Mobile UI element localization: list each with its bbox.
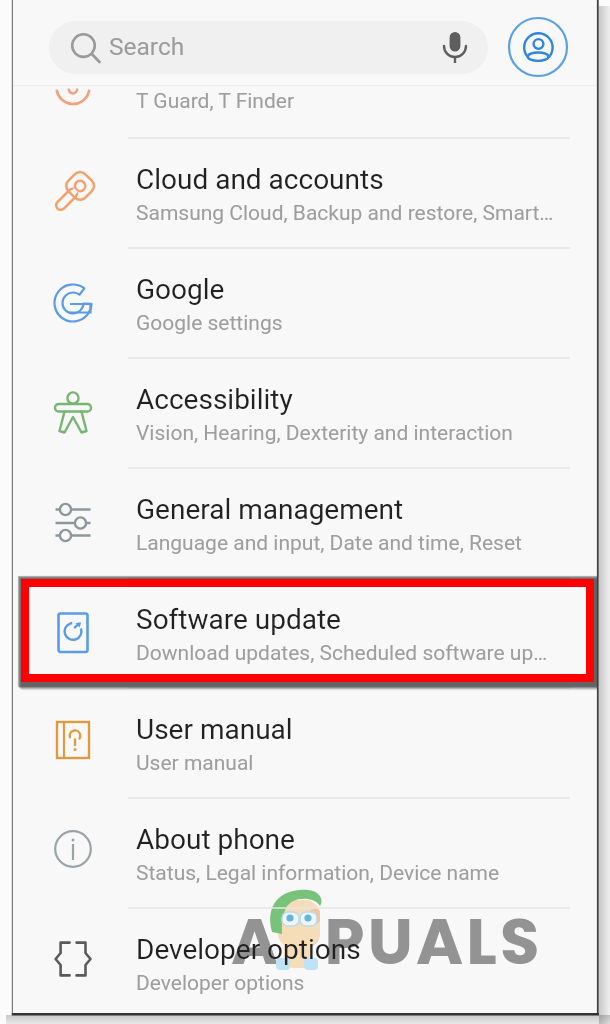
staticText: Google — [136, 273, 225, 306]
button[interactable]: Account — [507, 16, 569, 78]
staticText: Samsung Cloud, Backup and restore, Smart… — [136, 201, 554, 226]
staticText: Download updates, Scheduled software up… — [136, 641, 548, 666]
button[interactable]: Search — [49, 21, 488, 74]
button[interactable]: Cloud and accounts — [13, 138, 597, 248]
staticText: User manual — [136, 751, 254, 776]
staticText: About phone — [136, 823, 295, 856]
staticText: Language and input, Date and time, Reset — [136, 531, 522, 556]
staticText: Software update — [136, 603, 341, 636]
button[interactable]: T Guard, T Finder — [13, 86, 597, 138]
staticText: Vision, Hearing, Dexterity and interacti… — [136, 421, 513, 446]
staticText: Developer options — [136, 971, 305, 996]
staticText: T Guard, T Finder — [136, 89, 295, 114]
button[interactable]: General management — [13, 468, 597, 578]
button[interactable]: Google — [13, 248, 597, 358]
staticText: General management — [136, 493, 404, 526]
staticText: Accessibility — [136, 383, 293, 416]
staticText: User manual — [136, 713, 293, 746]
button[interactable]: User manual — [13, 688, 597, 798]
staticText: Search — [109, 32, 185, 61]
button[interactable]: Accessibility — [13, 358, 597, 468]
staticText: Google settings — [136, 311, 283, 336]
staticText: Cloud and accounts — [136, 163, 384, 196]
staticText: APPUALS — [231, 897, 543, 987]
staticText: Developer options — [136, 933, 361, 966]
button[interactable]: About phone — [13, 798, 597, 908]
button[interactable]: Software update — [13, 578, 597, 688]
button[interactable]: Developer options — [13, 908, 597, 1018]
staticText: Status, Legal information, Device name — [136, 861, 500, 886]
